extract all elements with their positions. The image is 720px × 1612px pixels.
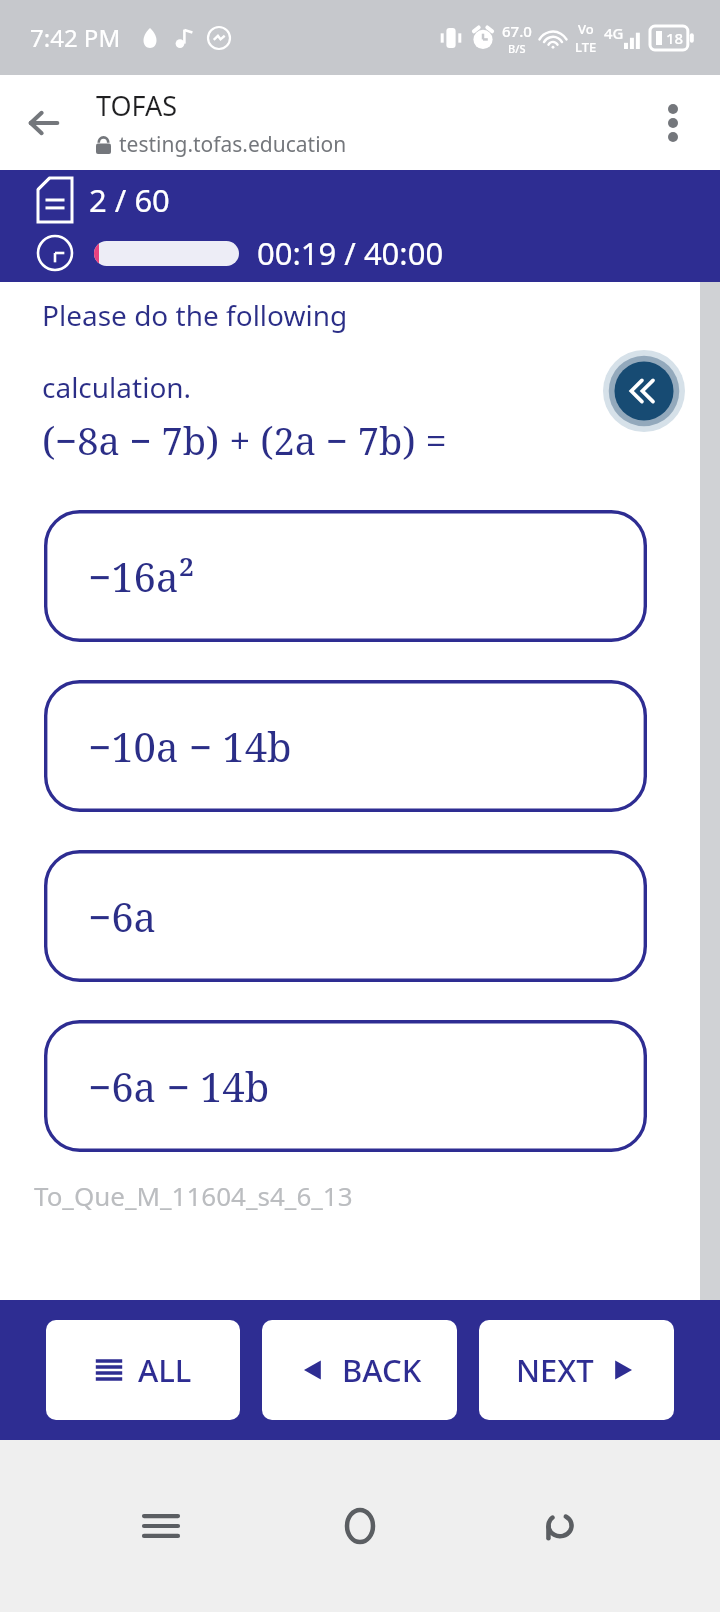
staticText: Vo xyxy=(578,20,594,38)
staticText: BACK xyxy=(342,1349,422,1391)
staticText: NEXT xyxy=(516,1349,594,1391)
staticText: 4G xyxy=(604,23,624,43)
staticText: Please do the following xyxy=(42,296,348,334)
button[interactable]: −16a² xyxy=(44,510,647,642)
button[interactable]: Back xyxy=(521,1487,599,1565)
staticText: 2 / 60 xyxy=(89,179,170,221)
staticText: −16a² xyxy=(88,549,195,603)
staticText: calculation. xyxy=(42,368,192,406)
button[interactable]: Back xyxy=(12,92,74,154)
staticText: TOFAS xyxy=(96,87,178,124)
staticText: −6a − 14b xyxy=(88,1059,270,1113)
button[interactable]: Home xyxy=(321,1487,399,1565)
staticText: testing.tofas.education xyxy=(119,130,347,159)
staticText: (−8a − 7b) + (2a − 7b) = xyxy=(42,414,447,466)
button[interactable]: NEXT xyxy=(479,1320,674,1420)
button[interactable]: −6a xyxy=(44,850,647,982)
button[interactable]: Collapse panel xyxy=(603,350,685,432)
button[interactable]: Recent apps xyxy=(122,1487,200,1565)
staticText: To_Que_M_11604_s4_6_13 xyxy=(34,1178,353,1213)
staticText: B/S xyxy=(508,41,526,56)
staticText: LTE xyxy=(575,38,597,56)
staticText: −10a − 14b xyxy=(88,719,292,773)
button[interactable]: BACK xyxy=(262,1320,457,1420)
staticText: 7:42 PM xyxy=(30,21,121,54)
staticText: 18 xyxy=(666,28,684,48)
button[interactable]: More options xyxy=(644,94,702,152)
button[interactable]: −6a − 14b xyxy=(44,1020,647,1152)
staticText: 00:19 / 40:00 xyxy=(257,232,444,274)
staticText: −6a xyxy=(88,889,157,943)
staticText: 67.0 xyxy=(502,21,532,41)
button[interactable]: −10a − 14b xyxy=(44,680,647,812)
staticText: ALL xyxy=(138,1349,192,1391)
button[interactable]: ALL xyxy=(46,1320,240,1420)
